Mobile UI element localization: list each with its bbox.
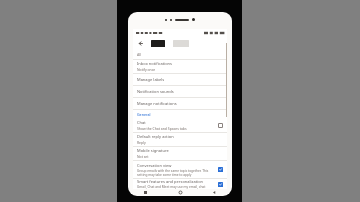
staticText: Show the Chat and Spaces tabs [137, 126, 187, 131]
button[interactable]: Inbox notifications [133, 60, 227, 73]
staticText: Notification sounds [137, 89, 174, 94]
button[interactable]: Unchecked [217, 122, 224, 129]
button[interactable]: Mobile signature [133, 147, 227, 160]
button[interactable]: Conversation view [133, 161, 227, 178]
button[interactable]: Manage labels [133, 74, 227, 85]
button[interactable]: Manage notifications [133, 98, 227, 109]
button[interactable]: Default reply action [133, 133, 227, 146]
staticText: All [137, 52, 142, 57]
button[interactable]: Notification sounds [133, 86, 227, 97]
button[interactable]: Chat [133, 119, 227, 132]
button[interactable]: Back [211, 189, 218, 196]
staticText: General [137, 112, 151, 117]
staticText: Manage labels [137, 77, 165, 82]
staticText: setting may take some time to apply [137, 173, 192, 177]
staticText: Manage notifications [137, 101, 177, 106]
button[interactable]: Home [177, 189, 184, 196]
button[interactable]: Smart features and personalization [133, 179, 227, 189]
button[interactable]: Checked [217, 166, 224, 173]
staticText: Reply [137, 140, 146, 145]
staticText: Not set [137, 154, 149, 159]
staticText: Notify once [137, 67, 156, 72]
staticText: Chat [137, 120, 146, 125]
button[interactable]: Back [136, 39, 144, 47]
staticText: Group emails with the same topic togethe… [137, 169, 209, 173]
staticText: Default reply action [137, 134, 174, 139]
staticText: Smart features and personalization [137, 179, 204, 184]
staticText: Inbox notifications [137, 61, 173, 66]
staticText: Conversation view [137, 163, 172, 168]
button[interactable]: Checked [217, 181, 224, 188]
button[interactable]: Recents [142, 189, 149, 196]
staticText: Gmail, Chat and Meet may use my email, c… [137, 185, 206, 189]
staticText: Mobile signature [137, 148, 169, 153]
